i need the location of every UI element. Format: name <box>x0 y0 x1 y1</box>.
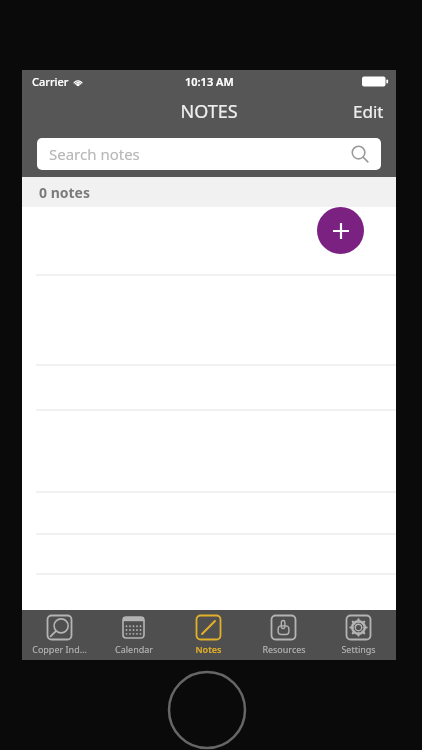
staticText: 0 notes <box>39 183 90 202</box>
staticText: 10:13 AM <box>185 74 234 89</box>
staticText: Copper Ind… <box>32 643 87 655</box>
button[interactable]: Search notes <box>37 138 381 170</box>
button[interactable]: Resources <box>246 610 321 660</box>
button[interactable]: Calendar <box>96 610 171 660</box>
staticText: Search notes <box>49 144 140 164</box>
button[interactable]: Notes <box>171 610 246 660</box>
staticText: Calendar <box>115 643 153 655</box>
button[interactable]: Settings <box>321 610 396 660</box>
button[interactable]: Add note <box>317 207 364 254</box>
staticText: Settings <box>341 643 376 655</box>
staticText: Resources <box>262 643 306 655</box>
staticText: Carrier <box>32 74 69 89</box>
staticText: Edit <box>353 100 384 123</box>
staticText: NOTES <box>180 99 238 124</box>
button[interactable]: Edit <box>341 94 396 129</box>
button[interactable]: Copper Ind… <box>22 610 96 660</box>
staticText: Notes <box>195 643 222 655</box>
